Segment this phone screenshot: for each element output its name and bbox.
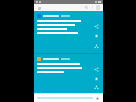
button[interactable]: More options: [90, 5, 95, 10]
button[interactable]: Attach: [95, 96, 100, 101]
other: Share: [94, 24, 99, 29]
other: Reply: [94, 34, 99, 39]
button[interactable]: Share: [92, 65, 100, 73]
button[interactable]: Share: [34, 11, 103, 53]
button[interactable]: Menu: [37, 6, 41, 10]
other: Reply: [94, 77, 99, 82]
button[interactable]: Reply: [92, 32, 100, 40]
other: Reply: [94, 85, 99, 90]
button[interactable]: Search: [84, 5, 89, 10]
button[interactable]: Share: [92, 22, 100, 30]
button[interactable]: Share: [34, 54, 103, 93]
other: Reply: [94, 44, 99, 49]
button[interactable]: Reply: [92, 85, 100, 90]
other: Share: [94, 67, 99, 72]
button[interactable]: Reply: [92, 42, 100, 50]
button[interactable]: Reply: [92, 75, 100, 83]
